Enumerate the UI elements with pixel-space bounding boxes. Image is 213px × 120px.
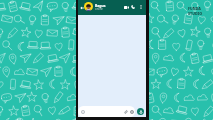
button[interactable]: More options (138, 4, 144, 10)
button[interactable]: Profile photo (84, 2, 93, 11)
button[interactable]: Voice call (130, 4, 136, 10)
button[interactable]: Attach (123, 109, 128, 114)
button[interactable]: Camera (129, 109, 134, 114)
button[interactable] (78, 106, 135, 117)
staticText: STUDIO (188, 11, 203, 16)
button[interactable]: Emoji (80, 109, 85, 114)
button[interactable]: Voice message (137, 108, 144, 115)
staticText: FUNDA (188, 6, 201, 11)
button[interactable]: Back (78, 0, 146, 15)
button[interactable]: Back (79, 5, 84, 10)
staticText: Bagus (95, 3, 106, 8)
button[interactable]: Video call (123, 4, 129, 10)
staticText: online (95, 7, 103, 11)
